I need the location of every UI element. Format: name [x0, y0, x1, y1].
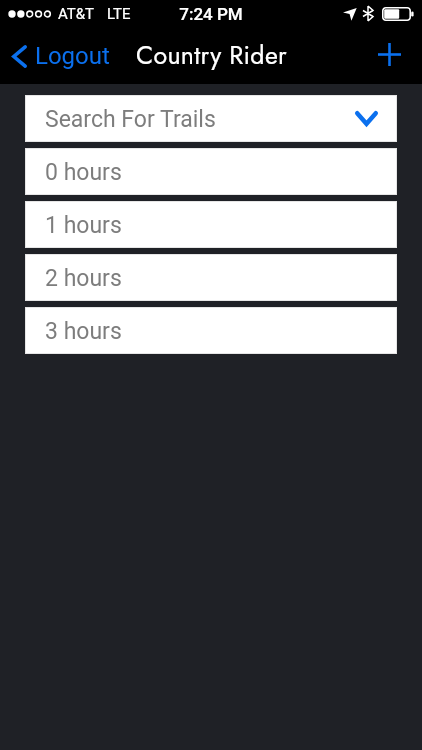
button[interactable]: 1 hours — [25, 201, 397, 248]
staticText: 2 hours — [45, 265, 122, 292]
staticText: 3 hours — [45, 318, 122, 345]
button[interactable]: Search For Trails — [25, 95, 397, 142]
button[interactable]: 3 hours — [25, 307, 397, 354]
button[interactable]: Add — [360, 28, 422, 84]
staticText: 1 hours — [45, 212, 122, 239]
staticText: Country Rider — [136, 37, 287, 73]
staticText: LTE — [107, 5, 131, 23]
staticText: 0 hours — [45, 159, 122, 186]
button[interactable]: 0 hours — [25, 148, 397, 195]
staticText: AT&T — [58, 5, 95, 23]
staticText: Search For Trails — [45, 106, 216, 133]
button[interactable]: 2 hours — [25, 254, 397, 301]
staticText: Logout — [35, 42, 110, 70]
staticText: 7:24 PM — [0, 4, 422, 24]
button[interactable]: Logout — [0, 28, 120, 84]
